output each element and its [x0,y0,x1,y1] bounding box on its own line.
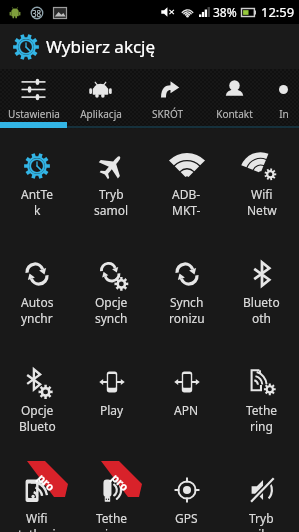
staticText: ring [250,418,273,434]
button[interactable]: Tryb [224,452,299,532]
button[interactable]: ADB- [149,128,224,236]
staticText: Synch [170,294,204,310]
button[interactable]: Tethe [224,344,299,452]
staticText: ring [100,526,123,532]
staticText: Wifi [26,510,48,526]
staticText: In [279,107,289,121]
button[interactable]: Wifi [224,128,299,236]
staticText: 38% [213,4,237,20]
staticText: Kontakt [216,107,253,121]
staticText: APN [174,402,199,418]
staticText: SKRÓT [152,107,183,121]
button[interactable]: Play [74,344,149,452]
staticText: Blueto [19,418,56,434]
staticText: Opcje [21,402,54,418]
button[interactable]: Kontakt [201,69,268,128]
staticText: pro [109,470,133,494]
staticText: Ustawienia [8,107,60,121]
button[interactable]: SKRÓT [134,69,201,128]
staticText: synch [95,310,128,326]
button[interactable]: Opcje [0,344,74,452]
button[interactable]: Blueto [224,236,299,344]
button[interactable]: Autos [0,236,74,344]
staticText: Tryb [99,186,124,202]
button[interactable]: APN [149,344,224,452]
staticText: GPS [175,510,198,526]
button[interactable]: Opcje [74,236,149,344]
button[interactable]: GPS [149,452,224,532]
button[interactable]: In [268,69,299,128]
staticText: Tryb [249,510,274,526]
button[interactable]: AntTe [0,128,74,236]
staticText: Blueto [243,294,280,310]
staticText: Wifi [251,186,273,202]
staticText: Wybierz akcję [46,35,156,58]
staticText: 38 [32,8,42,19]
button[interactable]: Tryb [74,128,149,236]
staticText: Play [100,402,124,418]
staticText: k [34,202,41,218]
staticText: ynchr [21,310,53,326]
staticText: ADB- [172,186,201,202]
staticText: pro [35,470,59,494]
staticText: Tethe [96,510,128,526]
button[interactable]: Tethe [74,452,149,532]
staticText: Netw [247,202,277,218]
staticText: ronizu [169,310,205,326]
button[interactable]: Ustawienia [0,69,67,128]
staticText: AntTe [21,186,54,202]
button[interactable]: Synch [149,236,224,344]
button[interactable]: Wybierz akcję [0,24,299,69]
staticText: Autos [21,294,54,310]
button[interactable]: Aplikacja [67,69,134,128]
staticText: Tethe [246,402,278,418]
staticText: milcz [247,526,276,532]
staticText: oth [252,310,272,326]
button[interactable]: Wifi [0,452,74,532]
staticText: Aplikacja [80,107,122,121]
staticText: MKT- [172,202,201,218]
staticText: tetheri [18,526,56,532]
staticText: Opcje [95,294,128,310]
staticText: samol [94,202,129,218]
staticText: 12:59 [261,3,295,21]
